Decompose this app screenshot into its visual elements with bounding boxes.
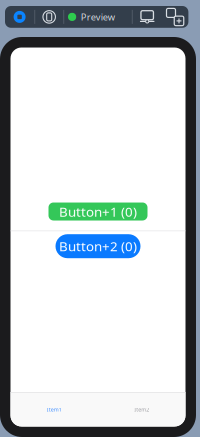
- staticText: Button+1 (0): [59, 203, 137, 220]
- button[interactable]: Button+2 (0): [55, 234, 140, 258]
- button[interactable]: Preview device: [35, 6, 63, 28]
- button[interactable]: Stop preview: [5, 6, 34, 28]
- staticText: Preview: [81, 11, 115, 23]
- button[interactable]: Item2: [98, 392, 185, 426]
- button[interactable]: Add preview: [162, 6, 188, 28]
- button[interactable]: Item1: [10, 392, 98, 426]
- staticText: Button+2 (0): [59, 237, 137, 255]
- button[interactable]: Preview: [64, 6, 120, 28]
- staticText: Item2: [134, 406, 149, 413]
- button[interactable]: Button+1 (0): [48, 202, 147, 220]
- button[interactable]: Display settings: [133, 6, 162, 28]
- staticText: Item1: [47, 406, 62, 413]
